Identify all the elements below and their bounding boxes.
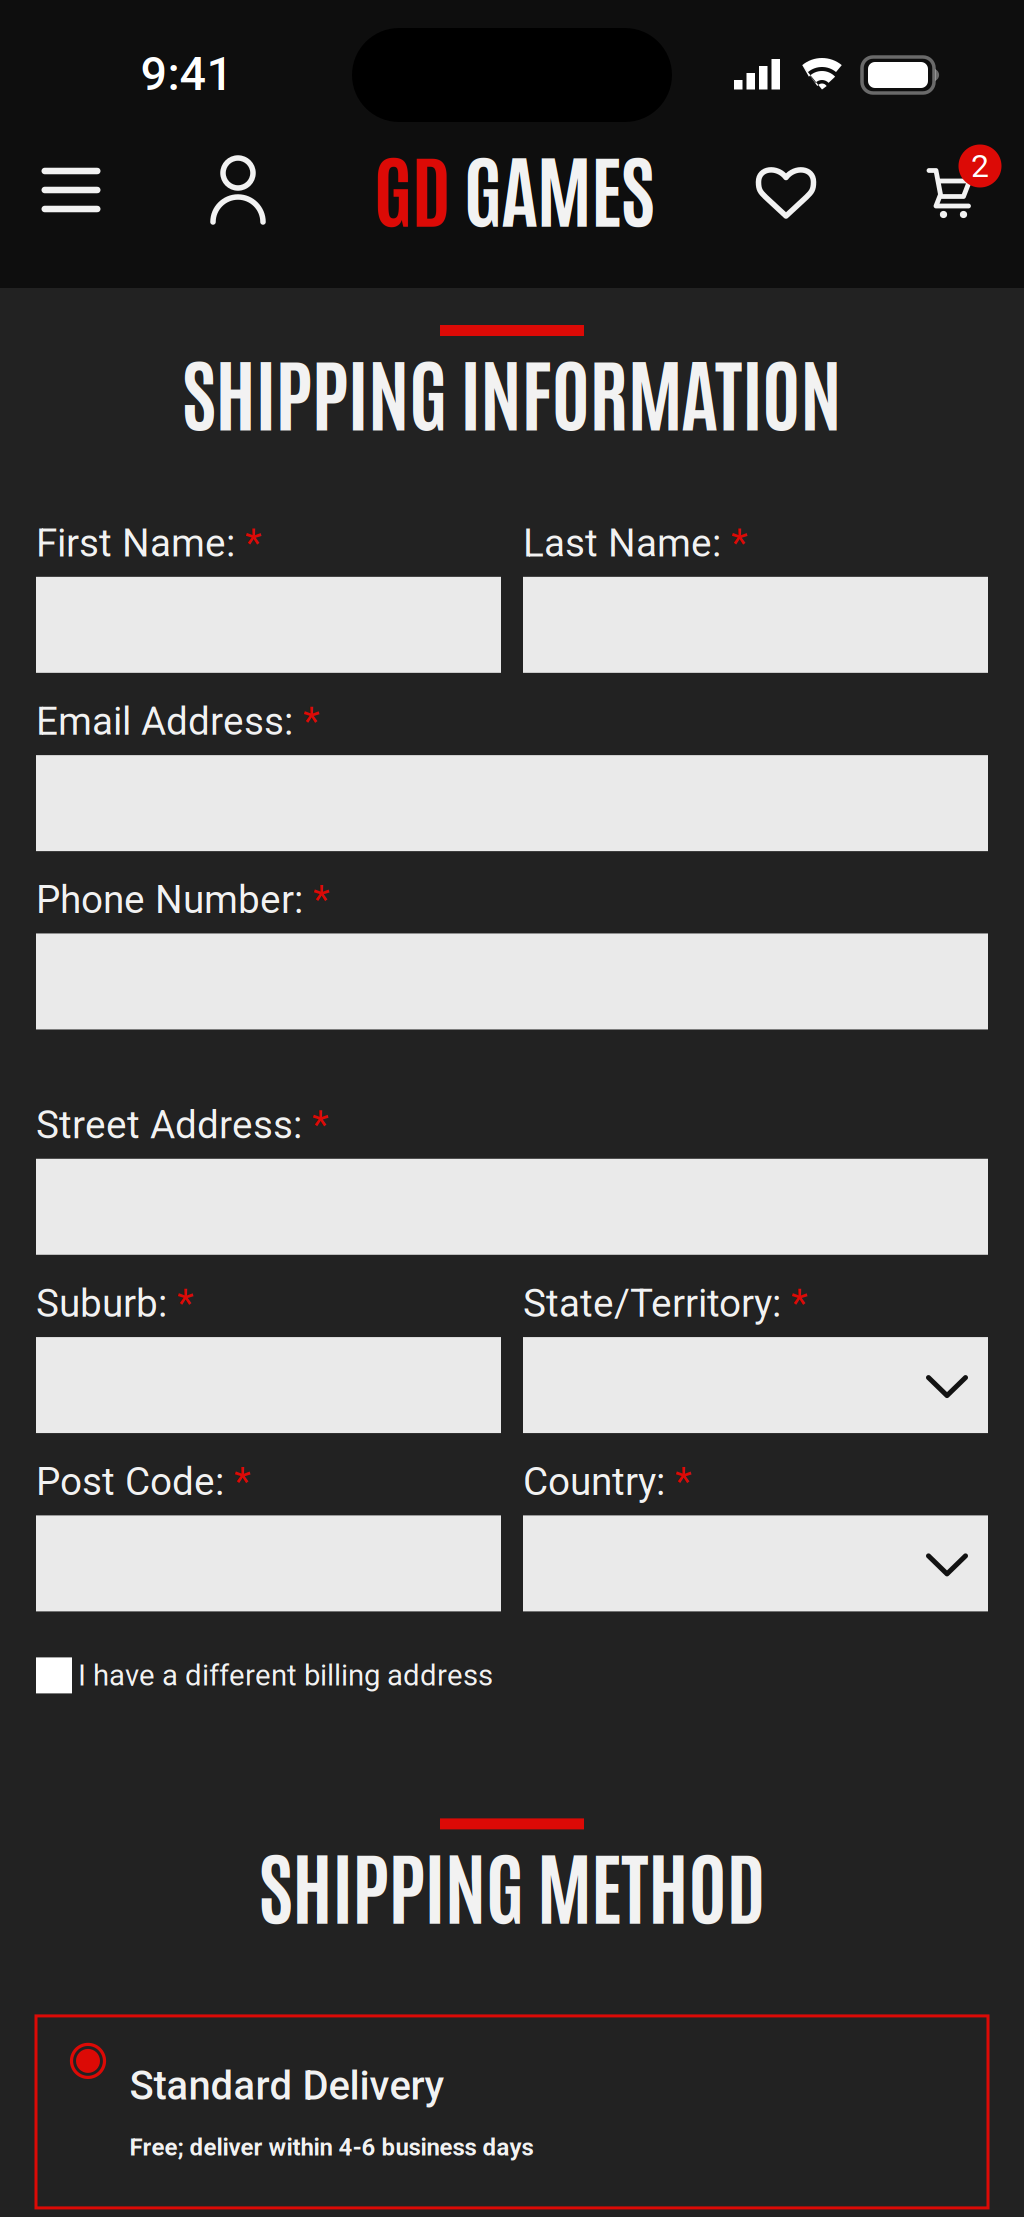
- staticText: *: [303, 877, 330, 922]
- staticText: Street Address:: [36, 1102, 302, 1148]
- staticText: Standard Delivery: [129, 2062, 444, 2109]
- staticText: *: [224, 1459, 251, 1504]
- staticText: Email Address:: [36, 699, 293, 744]
- staticText: *: [302, 1102, 329, 1148]
- staticText: First Name:: [36, 520, 235, 566]
- staticText: Free; deliver within 4-6 business days: [129, 2133, 533, 2161]
- staticText: Phone Number:: [36, 877, 303, 922]
- staticText: GD: [373, 134, 450, 238]
- staticText: Post Code:: [36, 1459, 224, 1504]
- staticText: *: [721, 520, 748, 566]
- staticText: *: [293, 699, 320, 744]
- staticText: *: [781, 1281, 808, 1326]
- button[interactable]: Cart, 2 items: [901, 150, 997, 236]
- staticText: *: [235, 520, 262, 566]
- button[interactable]: Wishlist: [738, 149, 834, 235]
- staticText: 2: [971, 147, 989, 185]
- staticText: *: [665, 1459, 692, 1504]
- button[interactable]: Standard Delivery: [36, 2016, 988, 2208]
- button[interactable]: Menu: [21, 147, 121, 233]
- staticText: GAMES: [450, 134, 655, 238]
- staticText: Suburb:: [36, 1281, 167, 1326]
- staticText: I have a different billing address: [78, 1658, 493, 1693]
- staticText: SHIPPING METHOD: [259, 1831, 765, 1935]
- staticText: Country:: [523, 1459, 665, 1504]
- button[interactable]: I have a different billing address: [36, 1657, 988, 1693]
- staticText: State/Territory:: [523, 1281, 781, 1326]
- staticText: Last Name:: [523, 520, 721, 566]
- staticText: SHIPPING INFORMATION: [182, 338, 842, 441]
- staticText: 9:41: [140, 47, 233, 101]
- button[interactable]: Account: [190, 147, 286, 233]
- staticText: *: [167, 1281, 194, 1326]
